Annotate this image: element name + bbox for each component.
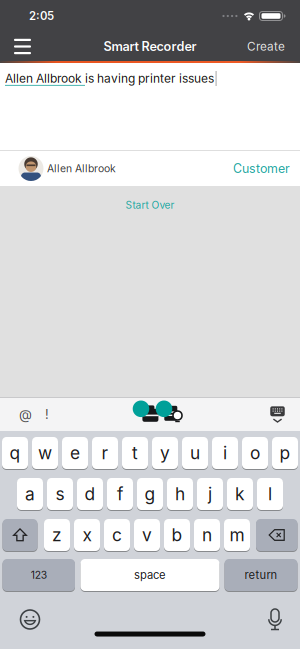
- button[interactable]: m: [224, 519, 250, 551]
- button[interactable]: h: [167, 478, 193, 510]
- staticText: Allen Allbrook: [47, 162, 116, 175]
- staticText: g: [144, 483, 155, 504]
- button[interactable]: i: [212, 437, 238, 469]
- button[interactable]: Suggestions: [132, 401, 184, 425]
- button[interactable]: d: [77, 478, 103, 510]
- button[interactable]: Start Over: [115, 186, 184, 211]
- button[interactable]: y: [152, 437, 178, 469]
- button[interactable]: Priority: [32, 407, 49, 422]
- button[interactable]: z: [44, 519, 70, 551]
- button[interactable]: e: [62, 437, 88, 469]
- button[interactable]: space: [80, 559, 219, 591]
- button[interactable]: Mention: [0, 406, 32, 422]
- staticText: x: [82, 524, 91, 545]
- staticText: f: [117, 483, 123, 504]
- staticText: y: [160, 442, 170, 463]
- staticText: q: [9, 442, 20, 463]
- staticText: @: [19, 406, 32, 422]
- staticText: j: [208, 483, 212, 504]
- staticText: r: [101, 442, 108, 463]
- staticText: c: [112, 524, 122, 545]
- button[interactable]: o: [242, 437, 268, 469]
- staticText: Customer: [233, 161, 290, 176]
- button[interactable]: Dictation: [266, 608, 300, 631]
- staticText: !: [45, 407, 49, 422]
- staticText: v: [142, 524, 152, 545]
- button[interactable]: Numbers: [2, 559, 75, 591]
- staticText: Smart Recorder: [103, 39, 196, 54]
- button[interactable]: w: [32, 437, 58, 469]
- staticText: u: [190, 442, 200, 463]
- button[interactable]: Allen Allbrook: [0, 151, 300, 186]
- button[interactable]: r: [92, 437, 118, 469]
- button[interactable]: Shift: [2, 519, 37, 551]
- staticText: l: [268, 483, 272, 504]
- button[interactable]: Delete: [256, 519, 297, 551]
- button[interactable]: g: [137, 478, 163, 510]
- button[interactable]: Dismiss Keyboard: [268, 405, 300, 423]
- button[interactable]: k: [227, 478, 253, 510]
- staticText: s: [55, 483, 64, 504]
- button[interactable]: x: [74, 519, 100, 551]
- staticText: space: [134, 568, 166, 582]
- button[interactable]: n: [194, 519, 220, 551]
- staticText: d: [84, 483, 95, 504]
- staticText: Allen Allbrook is having printer issues: [5, 71, 214, 86]
- button[interactable]: p: [272, 437, 298, 469]
- staticText: n: [202, 524, 212, 545]
- staticText: Create: [247, 39, 285, 54]
- staticText: t: [132, 442, 138, 463]
- button[interactable]: s: [47, 478, 73, 510]
- button[interactable]: f: [107, 478, 133, 510]
- button[interactable]: l: [257, 478, 283, 510]
- button[interactable]: b: [164, 519, 190, 551]
- staticText: 123: [31, 569, 47, 581]
- button[interactable]: a: [17, 478, 43, 510]
- staticText: h: [175, 483, 185, 504]
- staticText: b: [171, 524, 182, 545]
- staticText: m: [229, 524, 244, 545]
- button[interactable]: c: [104, 519, 130, 551]
- staticText: w: [38, 442, 52, 463]
- staticText: k: [235, 483, 245, 504]
- staticText: e: [70, 442, 80, 463]
- button[interactable]: v: [134, 519, 160, 551]
- button[interactable]: u: [182, 437, 208, 469]
- staticText: p: [279, 442, 290, 463]
- staticText: i: [223, 442, 227, 463]
- button[interactable]: Emoji: [0, 609, 40, 629]
- staticText: 2:05: [29, 9, 54, 23]
- button[interactable]: q: [2, 437, 28, 469]
- staticText: a: [25, 483, 35, 504]
- button[interactable]: Return: [224, 559, 297, 591]
- button[interactable]: t: [122, 437, 148, 469]
- staticText: return: [244, 568, 277, 582]
- button[interactable]: j: [197, 478, 223, 510]
- staticText: Start Over: [125, 199, 174, 211]
- staticText: o: [250, 442, 260, 463]
- staticText: z: [52, 524, 62, 545]
- button[interactable]: Create: [247, 33, 300, 60]
- button[interactable]: Menu: [0, 33, 31, 60]
